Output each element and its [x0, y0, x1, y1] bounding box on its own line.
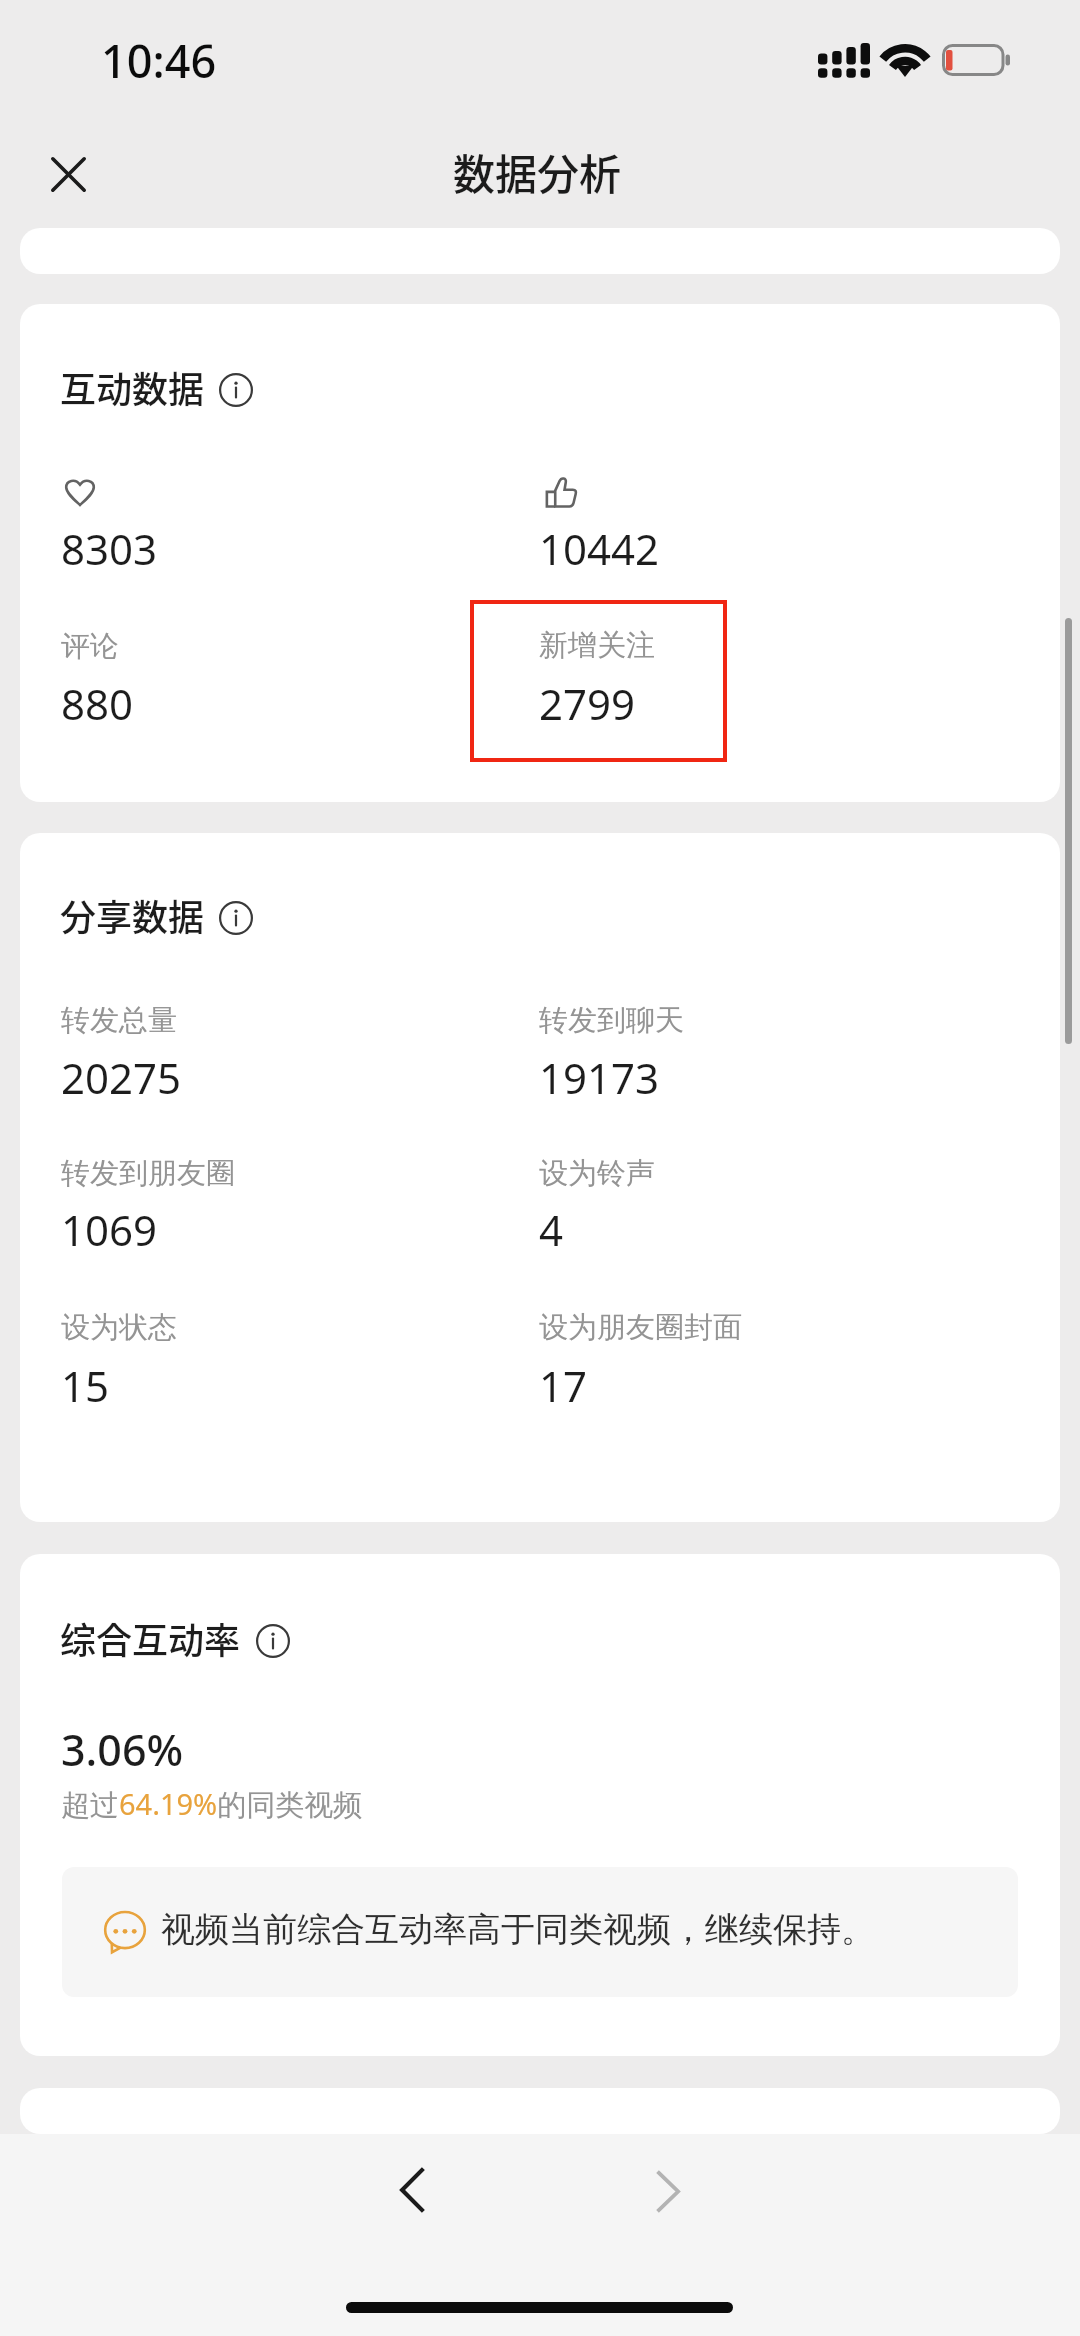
- staticText: 设为铃声: [539, 1155, 655, 1192]
- staticText: 数据分析: [453, 141, 622, 202]
- staticText: 互动数据: [60, 361, 205, 413]
- staticText: 综合互动率: [60, 1612, 241, 1664]
- button[interactable]: Close: [29, 135, 107, 213]
- button[interactable]: About 分享数据: [219, 901, 253, 935]
- button[interactable]: 新增关注 2799: [470, 600, 727, 762]
- staticText: 3.06%: [61, 1720, 184, 1779]
- button[interactable]: Previous: [357, 2135, 467, 2245]
- staticText: 新增关注: [539, 627, 655, 664]
- staticText: 10442: [539, 520, 660, 577]
- staticText: 转发到朋友圈: [61, 1155, 235, 1192]
- staticText: 19173: [539, 1049, 660, 1106]
- staticText: 8303: [61, 520, 158, 577]
- staticText: 分享数据: [60, 889, 205, 941]
- staticText: 1069: [61, 1201, 158, 1258]
- button[interactable]: 视频当前综合互动率高于同类视频，继续保持。: [62, 1867, 1018, 1997]
- staticText: 880: [61, 675, 134, 732]
- staticText: 评论: [61, 628, 119, 665]
- staticText: 设为朋友圈封面: [539, 1309, 742, 1346]
- staticText: 设为状态: [61, 1309, 177, 1346]
- staticText: 视频当前综合互动率高于同类视频，继续保持。: [161, 1908, 875, 1951]
- button[interactable]: About 互动数据: [219, 373, 253, 407]
- staticText: 转发到聊天: [539, 1002, 684, 1039]
- staticText: 15: [61, 1357, 110, 1414]
- staticText: 10:46: [101, 30, 217, 91]
- staticText: 转发总量: [61, 1002, 177, 1039]
- button[interactable]: About 综合互动率: [256, 1624, 290, 1658]
- button[interactable]: Next: [613, 2136, 723, 2246]
- staticText: 2799: [539, 675, 636, 732]
- staticText: 20275: [61, 1049, 182, 1106]
- staticText: 超过64.19%的同类视频: [61, 1784, 363, 1824]
- staticText: 4: [539, 1201, 564, 1258]
- staticText: 17: [539, 1357, 588, 1414]
